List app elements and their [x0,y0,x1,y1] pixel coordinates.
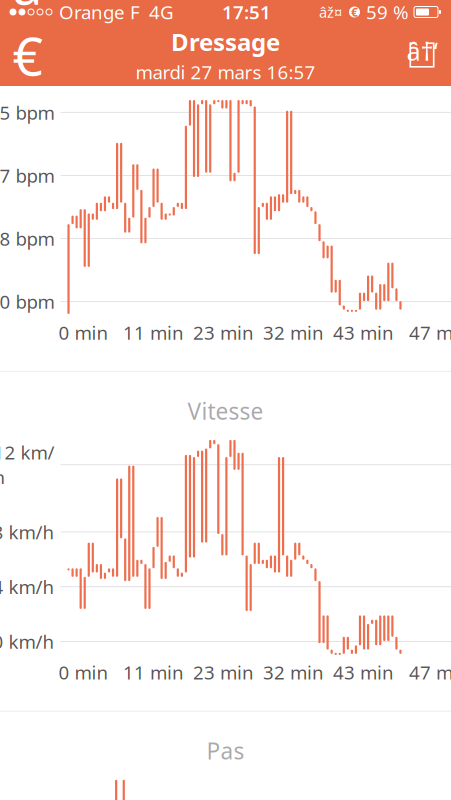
staticText: 17:51 [222,0,271,24]
staticText: 28 bpm [0,226,54,251]
staticText: 32 min [263,660,324,685]
staticText: â€¢ [351,0,358,36]
button[interactable]: Share [399,33,445,77]
staticText: 0 min [58,660,108,685]
staticText: 32 min [263,320,324,345]
staticText: Orange F [59,0,140,24]
staticText: â†‘ [406,34,437,68]
staticText: 23 min [193,320,254,345]
staticText: 0 min [58,320,108,345]
staticText: 0 km/h [0,629,54,654]
staticText: Dressage [171,26,280,58]
staticText: 4 km/h [0,574,54,599]
staticText: 11 min [123,320,184,345]
staticText: 43 min [333,660,394,685]
staticText: mardi 27 mars 16:57 [135,59,315,84]
staticText: 23 min [193,660,254,685]
staticText: Pas [206,736,244,766]
staticText: 0 bpm [0,289,54,314]
staticText: 85 bpm [0,100,54,125]
staticText: 47 mi [409,320,451,345]
staticText: â€¹ [12,0,43,161]
staticText: 8 km/h [0,519,54,544]
staticText: 57 bpm [0,163,54,188]
staticText: 59 % [366,0,409,24]
staticText: 12 km/h [0,440,54,489]
staticText: 43 min [333,320,394,345]
staticText: Vitesse [187,396,263,426]
staticText: 4G [149,0,174,24]
staticText: 11 min [123,660,184,685]
button[interactable]: Back [6,33,50,77]
staticText: 47 mi [409,660,451,685]
staticText: âž¤ [319,2,342,22]
